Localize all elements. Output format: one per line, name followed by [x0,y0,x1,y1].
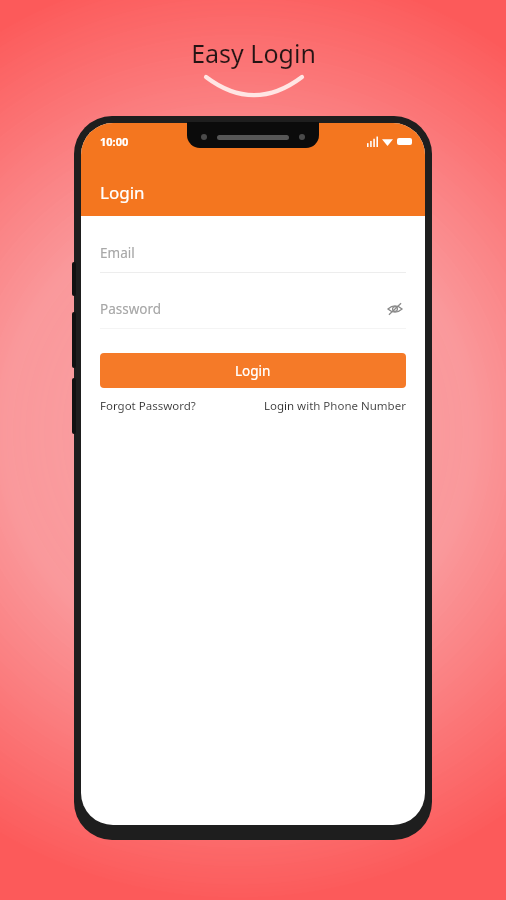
button[interactable]: Show password [384,298,406,320]
button[interactable]: Login with Phone Number [264,398,406,414]
staticText: Login with Phone Number [264,398,406,414]
button[interactable]: Login [100,353,406,388]
staticText: Email [100,244,135,262]
staticText: 10:00 [100,134,129,149]
staticText: Login [235,362,271,380]
button[interactable]: Email [100,234,406,273]
button[interactable]: Forgot Password? [100,398,196,414]
staticText: Login [100,181,145,204]
staticText: Easy Login [191,36,316,70]
staticText: Password [100,300,162,318]
staticText: Forgot Password? [100,398,196,414]
button[interactable]: Password [100,290,406,329]
